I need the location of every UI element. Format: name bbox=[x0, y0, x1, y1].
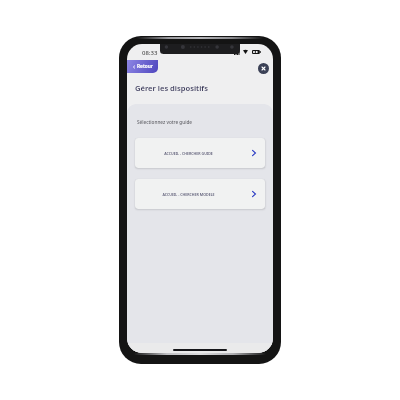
staticText: ACCUEIL - CHERCHER GUIDE bbox=[164, 151, 213, 156]
button[interactable]: Fermer bbox=[258, 63, 269, 74]
staticText: Retour bbox=[137, 63, 153, 70]
staticText: ACCUEIL - CHERCHER MODELE bbox=[162, 192, 215, 197]
button[interactable]: Retour bbox=[127, 60, 158, 73]
staticText: Gérer les dispositifs bbox=[135, 83, 208, 93]
staticText: Sélectionnez votre guide bbox=[137, 119, 193, 125]
button[interactable]: ACCUEIL - CHERCHER MODELE bbox=[135, 179, 265, 209]
button[interactable]: ACCUEIL - CHERCHER GUIDE bbox=[135, 138, 265, 168]
staticText: 08:33 bbox=[142, 49, 158, 57]
